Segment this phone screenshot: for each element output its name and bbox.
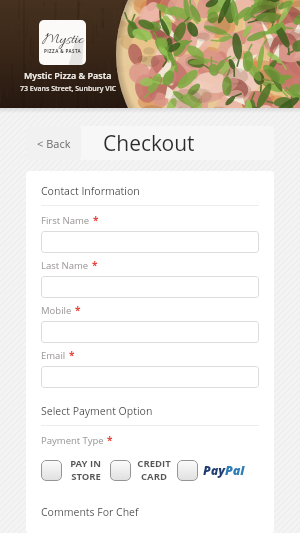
staticText: * xyxy=(92,258,98,272)
staticText: * xyxy=(75,303,81,317)
staticText: Last Name xyxy=(41,259,89,272)
staticText: Select Payment Option xyxy=(41,404,153,418)
staticText: Mystic Pizza & Pasta xyxy=(24,69,112,81)
staticText: * xyxy=(69,348,75,362)
button[interactable]: Pay in store xyxy=(41,457,101,483)
staticText: Payment Type xyxy=(41,434,104,447)
staticText: Email xyxy=(41,349,66,362)
staticText: CREDIT xyxy=(137,457,171,470)
button[interactable] xyxy=(41,276,259,298)
staticText: CARD xyxy=(141,470,167,483)
staticText: 73 Evans Street, Sunbury VIC xyxy=(20,84,117,94)
staticText: Pal xyxy=(225,462,245,479)
button[interactable]: Credit card xyxy=(110,457,171,483)
staticText: * xyxy=(107,433,113,447)
button[interactable]: < Back xyxy=(26,126,81,160)
staticText: Mystic xyxy=(42,30,84,50)
button[interactable]: PayPal xyxy=(177,460,246,481)
staticText: < Back xyxy=(37,136,71,151)
button[interactable] xyxy=(41,231,259,253)
staticText: * xyxy=(93,213,99,227)
button[interactable] xyxy=(41,321,259,343)
staticText: Comments For Chef xyxy=(41,505,139,519)
staticText: PIZZA & PASTA xyxy=(44,48,82,54)
button[interactable] xyxy=(41,366,259,388)
staticText: STORE xyxy=(71,470,101,483)
staticText: Pay xyxy=(203,462,226,479)
staticText: Checkout xyxy=(103,129,195,158)
staticText: PAY IN xyxy=(70,457,101,470)
staticText: Contact Information xyxy=(41,184,140,198)
staticText: First Name xyxy=(41,214,90,227)
staticText: Mobile xyxy=(41,304,72,317)
